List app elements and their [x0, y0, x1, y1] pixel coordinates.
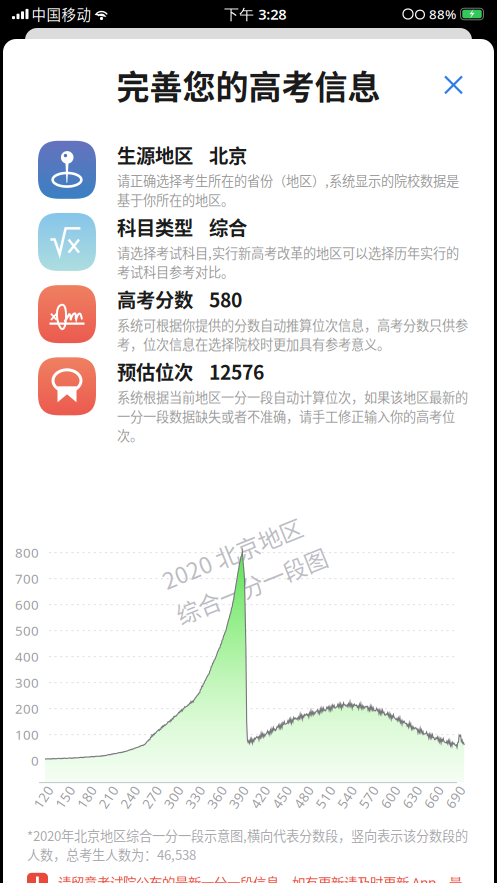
staticText: 高考分数: [117, 285, 193, 313]
staticText: 12576: [209, 357, 264, 385]
staticText: 生源地区: [117, 141, 193, 169]
staticText: 120: [35, 795, 59, 812]
button[interactable]: 高考分数: [3, 283, 494, 355]
staticText: 540: [339, 795, 363, 812]
staticText: 360: [208, 795, 232, 812]
staticText: 210: [100, 795, 124, 812]
staticText: 预估位次: [117, 357, 193, 385]
staticText: 中国移动: [28, 3, 94, 24]
staticText: 系统根据当前地区一分一段自动计算位次，如果该地区最新的一分一段数据缺失或者不准确…: [117, 387, 468, 445]
staticText: 570: [360, 795, 384, 812]
staticText: 270: [143, 795, 167, 812]
staticText: 510: [317, 795, 341, 812]
staticText: 450: [273, 795, 297, 812]
staticText: 完善您的高考信息: [116, 61, 380, 109]
staticText: 科目类型: [117, 213, 193, 241]
staticText: 北京: [209, 141, 247, 169]
staticText: 系统可根据你提供的分数自动推算位次信息，高考分数只供参考，位次信息在选择院校时更…: [117, 315, 468, 353]
button[interactable]: 生源地区: [3, 139, 494, 211]
staticText: 综合: [209, 213, 247, 241]
staticText: 150: [57, 795, 81, 812]
staticText: 630: [404, 795, 428, 812]
staticText: 2020 北京地区: [163, 527, 312, 561]
staticText: 690: [447, 795, 471, 812]
button[interactable]: 预估位次: [3, 355, 494, 447]
staticText: 800: [15, 544, 39, 561]
button[interactable]: Close: [433, 64, 474, 105]
staticText: 下午 3:28: [224, 4, 286, 24]
staticText: 390: [230, 795, 254, 812]
staticText: 600: [382, 795, 406, 812]
staticText: 600: [15, 596, 39, 613]
staticText: 700: [15, 570, 39, 587]
staticText: 300: [15, 674, 39, 691]
staticText: 400: [15, 648, 39, 665]
staticText: 420: [252, 795, 276, 812]
staticText: 0: [31, 752, 39, 769]
staticText: 580: [209, 285, 242, 313]
staticText: 200: [15, 700, 39, 717]
staticText: 660: [425, 795, 449, 812]
staticText: 180: [78, 795, 102, 812]
staticText: 请正确选择考生所在的省份（地区）,系统显示的院校数据是基于你所在的地区。: [117, 171, 459, 209]
staticText: 综合一分一段图: [163, 565, 324, 598]
staticText: 480: [295, 795, 319, 812]
button[interactable]: 科目类型: [3, 211, 494, 283]
staticText: 88%: [426, 5, 459, 23]
staticText: 330: [187, 795, 211, 812]
staticText: 请选择考试科目,实行新高考改革的地区可以选择历年实行的考试科目参考对比。: [117, 243, 459, 281]
staticText: 500: [15, 622, 39, 639]
staticText: 请留意考试院公布的最新一分一段信息，如有更新请及时更新 App，最终数据请以各地…: [58, 873, 465, 883]
staticText: 300: [165, 795, 189, 812]
staticText: *2020年北京地区综合一分一段示意图,横向代表分数段，竖向表示该分数段的人数，…: [27, 826, 468, 864]
staticText: 240: [122, 795, 146, 812]
staticText: 100: [15, 726, 39, 743]
